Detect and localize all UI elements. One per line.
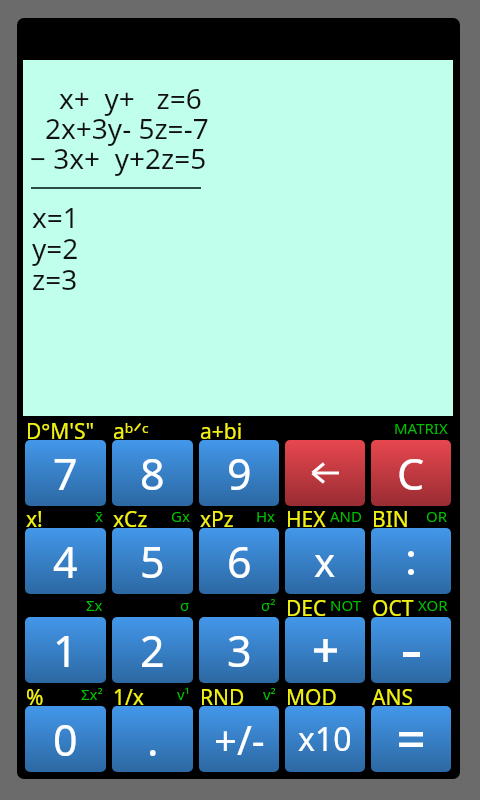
staticText: x+ y+ z=6 [59,79,202,117]
staticText: Σx [86,595,103,615]
button[interactable]: 9 [199,440,279,506]
staticText: 4 [53,532,78,591]
staticText: 0 [53,710,78,769]
button[interactable]: Equals [371,706,451,772]
staticText: NOT [330,595,362,615]
button[interactable]: Minus [371,617,451,683]
staticText: AND [330,506,362,526]
button[interactable]: Plus [285,617,365,683]
staticText: 2 [140,621,165,680]
staticText: MOD [286,683,337,705]
staticText: % [26,683,44,705]
button[interactable]: Backspace [285,440,365,506]
staticText: BIN [372,505,409,527]
button[interactable]: +/- [199,706,279,772]
button[interactable]: C [371,440,451,506]
button[interactable]: Divide [371,528,451,594]
staticText: 1 [53,621,78,680]
staticText: σ [180,595,190,615]
staticText: 2x+3y- 5z=-7 [45,109,209,147]
button[interactable]: 4 [25,528,106,594]
staticText: RND [200,683,245,705]
staticText: z=3 [32,260,78,298]
staticText: v² [263,684,276,704]
staticText: OCT [372,594,414,616]
staticText: x=1 [32,198,79,236]
button[interactable]: 6 [199,528,279,594]
staticText: − 3x+ y+2z=5 [30,139,207,177]
staticText: a+bi [200,417,243,439]
button[interactable]: 5 [112,528,193,594]
staticText: x [314,534,336,588]
button[interactable]: 2 [112,617,193,683]
button[interactable]: 7 [25,440,106,506]
staticText: x10 [298,717,352,761]
staticText: HEX [286,505,326,527]
button[interactable]: . [112,706,193,772]
staticText: 5 [140,532,165,591]
staticText: x! [26,505,43,527]
staticText: Σx² [81,684,103,704]
staticText: . [147,710,159,769]
staticText: +/- [214,712,265,766]
staticText: 1/x [113,683,144,705]
staticText: D°M'S" [26,417,95,439]
staticText: XOR [418,595,448,615]
button[interactable]: 8 [112,440,193,506]
staticText: ANS [372,683,413,705]
button[interactable]: x10 [285,706,365,772]
staticText: xPz [200,505,234,527]
staticText: 3 [227,621,252,680]
button[interactable]: 0 [25,706,106,772]
staticText: Gx [171,506,190,526]
staticText: MATRIX [394,418,448,438]
staticText: v¹ [177,684,190,704]
staticText: xCz [113,505,148,527]
button[interactable]: x [285,528,365,594]
staticText: y=2 [32,229,79,267]
button[interactable]: 1 [25,617,106,683]
staticText: C [397,444,425,503]
staticText: σ² [261,595,276,615]
staticText: x̄ [95,506,103,526]
staticText: 8 [140,444,165,503]
staticText: aᵇᐟᶜ [113,417,149,439]
staticText: 9 [227,444,252,503]
staticText: 6 [227,532,252,591]
button[interactable]: 3 [199,617,279,683]
staticText: OR [426,506,448,526]
staticText: Hx [256,506,276,526]
staticText: 7 [53,444,78,503]
staticText: DEC [286,594,327,616]
